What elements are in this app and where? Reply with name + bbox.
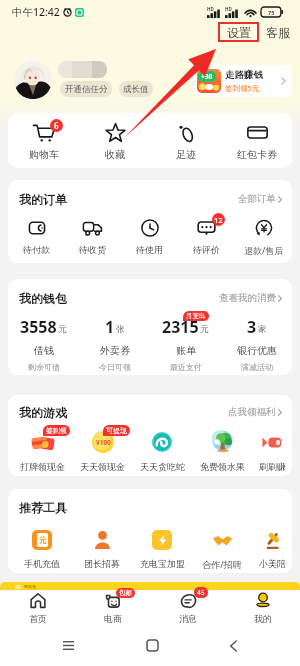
staticText: 客服 (266, 25, 290, 40)
button[interactable]: 待收货 (64, 218, 121, 255)
button[interactable]: 3 (221, 316, 292, 372)
staticText: 待收货 (79, 244, 106, 255)
button[interactable]: 退款/售后 (235, 218, 292, 256)
button[interactable]: 2315 (150, 316, 221, 372)
staticText: 点我领福利 (228, 406, 276, 418)
staticText: 全部订单 (238, 193, 276, 205)
button[interactable]: 收藏 (79, 113, 150, 168)
button[interactable]: 45 (150, 590, 225, 625)
staticText: 元 (39, 536, 47, 545)
button[interactable]: 我的 (225, 590, 300, 625)
staticText: 3 (247, 316, 257, 338)
button[interactable]: 成长值 (119, 81, 153, 97)
staticText: 张 (116, 324, 125, 335)
staticText: 月支出 (186, 312, 206, 320)
staticText: 45 (197, 588, 205, 597)
button[interactable]: Profile avatar (14, 61, 52, 99)
staticText: 签到领 (46, 426, 67, 435)
staticText: 打牌领现金 (20, 461, 65, 472)
button[interactable]: Home (137, 630, 168, 661)
button[interactable]: 天天贪吃蛇 (132, 429, 192, 472)
staticText: 成长值 (123, 84, 149, 95)
staticText: 退款/售后 (244, 244, 284, 256)
button[interactable]: ¥100 (72, 429, 132, 472)
button[interactable]: 待使用 (121, 218, 178, 255)
button[interactable]: 元 (12, 529, 72, 569)
staticText: 我的订单 (19, 192, 67, 207)
button[interactable]: 设置 (218, 22, 259, 42)
staticText: 设置 (227, 25, 251, 40)
staticText: HD (225, 6, 232, 12)
button[interactable]: 团长招募 (72, 529, 132, 569)
staticText: 元 (200, 324, 209, 335)
staticText: 待付款 (23, 244, 50, 255)
staticText: 剩余可借 (28, 362, 60, 372)
staticText: 合作/招聘 (202, 558, 242, 570)
staticText: 账单 (176, 344, 196, 357)
staticText: 可提现 (106, 426, 127, 435)
staticText: 免费领水果 (200, 461, 245, 472)
button[interactable]: +30 (193, 65, 291, 97)
staticText: 待评价 (193, 244, 220, 255)
button[interactable]: 小美陪 (252, 529, 292, 569)
staticText: 12 (214, 215, 223, 225)
staticText: 最近支付 (170, 362, 202, 372)
staticText: 借钱 (34, 344, 54, 357)
staticText: +30 (201, 72, 213, 81)
staticText: 包邮 (119, 589, 132, 597)
staticText: 收藏 (105, 148, 125, 161)
staticText: 查看我的消费 (219, 292, 276, 304)
button[interactable]: 红包卡券 (221, 113, 292, 168)
staticText: 推荐工具 (19, 500, 67, 515)
button[interactable]: Back (220, 630, 247, 662)
staticText: 2315 (162, 316, 199, 338)
staticText: 75 (268, 9, 275, 16)
button[interactable]: 签到领 (12, 429, 72, 472)
button[interactable]: 首页 (0, 590, 75, 625)
staticText: 开通信任分 (65, 84, 108, 95)
staticText: 今日可领 (99, 362, 131, 372)
staticText: 签到领 (24, 584, 36, 589)
staticText: 充电宝加盟 (140, 558, 185, 569)
button[interactable]: 免费领水果 (192, 429, 252, 472)
staticText: 中午12:42 (12, 5, 60, 19)
staticText: 首页 (29, 613, 47, 624)
staticText: 消息 (179, 613, 197, 624)
staticText: HD (207, 6, 214, 12)
button[interactable]: 3558 (8, 316, 79, 372)
button[interactable]: 12 (178, 218, 235, 255)
staticText: 1 (105, 316, 115, 338)
staticText: 我的钱包 (19, 291, 67, 306)
staticText: 银行优惠 (237, 344, 277, 357)
staticText: 待使用 (136, 244, 163, 255)
staticText: 我的 (254, 613, 272, 624)
button[interactable]: 足迹 (150, 113, 221, 168)
button[interactable]: 包邮 (75, 590, 150, 625)
button[interactable]: 开通信任分 (60, 81, 112, 97)
staticText: 6 (54, 120, 59, 131)
staticText: 元 (58, 324, 67, 335)
staticText: 小美陪 (259, 558, 286, 569)
staticText: 外卖券 (100, 344, 130, 357)
staticText: 走路赚钱 (225, 69, 263, 81)
staticText: 天天贪吃蛇 (140, 461, 185, 472)
staticText: ¥100 (96, 438, 111, 447)
staticText: 满减活动 (241, 362, 273, 372)
staticText: 足迹 (176, 148, 196, 161)
staticText: 天天领现金 (80, 461, 125, 472)
button[interactable]: 6 (8, 113, 79, 168)
button[interactable]: 客服 (264, 22, 291, 42)
button[interactable]: 充电宝加盟 (132, 529, 192, 569)
button[interactable]: 1 (79, 316, 150, 372)
staticText: 刷刷赚 (259, 461, 286, 472)
button[interactable]: 刷刷赚 (252, 429, 292, 472)
button[interactable]: Recents (53, 631, 84, 660)
staticText: 电商 (104, 613, 122, 624)
staticText: 红包卡券 (237, 148, 277, 161)
button[interactable]: 全部订单 (237, 190, 283, 208)
staticText: 手机充值 (24, 558, 60, 569)
button[interactable]: 待付款 (8, 218, 64, 255)
button[interactable]: 点我领福利 (227, 403, 283, 421)
button[interactable]: 合作/招聘 (192, 529, 252, 570)
button[interactable]: 查看我的消费 (218, 289, 283, 307)
